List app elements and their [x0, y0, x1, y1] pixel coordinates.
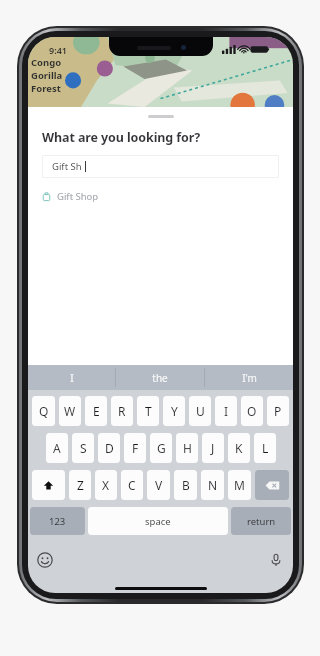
button[interactable]: J [202, 433, 224, 463]
staticText: I'm [242, 371, 257, 385]
staticText: X [102, 477, 110, 493]
button[interactable]: Q [32, 396, 55, 426]
staticText: Z [77, 477, 84, 493]
button[interactable]: 123 [30, 507, 85, 535]
button[interactable]: E [85, 396, 107, 426]
button[interactable]: Emoji keyboard [36, 551, 54, 569]
button[interactable]: Y [163, 396, 185, 426]
staticText: S [80, 440, 87, 456]
button[interactable]: S [72, 433, 94, 463]
button[interactable]: V [147, 470, 170, 500]
button[interactable]: G [150, 433, 172, 463]
staticText: C [128, 477, 136, 493]
button[interactable]: N [201, 470, 224, 500]
button[interactable]: X [95, 470, 117, 500]
button[interactable]: F [124, 433, 146, 463]
staticText: return [247, 515, 276, 528]
staticText: Forest [31, 82, 61, 95]
staticText: Gift Sh [52, 160, 82, 173]
button[interactable]: Shift [32, 470, 65, 500]
button[interactable]: M [228, 470, 251, 500]
button[interactable]: Backspace [255, 470, 289, 500]
staticText: U [196, 403, 205, 419]
staticText: H [183, 440, 192, 456]
staticText: G [157, 440, 166, 456]
staticText: Gift Shop [57, 190, 99, 203]
staticText: T [145, 403, 152, 419]
button[interactable]: Gift Sh [42, 155, 279, 178]
button[interactable]: A [46, 433, 68, 463]
button[interactable]: Z [69, 470, 91, 500]
button[interactable]: K [228, 433, 250, 463]
staticText: Congo [31, 56, 62, 69]
button[interactable]: O [241, 396, 263, 426]
staticText: V [155, 477, 163, 493]
staticText: R [118, 403, 126, 419]
button[interactable]: I'm [205, 365, 293, 390]
staticText: space [145, 515, 171, 528]
staticText: 9:41 [49, 44, 67, 56]
button[interactable]: Gift Shop [28, 187, 293, 205]
staticText: the [152, 371, 168, 385]
staticText: D [105, 440, 114, 456]
staticText: M [234, 477, 245, 493]
staticText: F [132, 440, 139, 456]
staticText: What are you looking for? [42, 129, 201, 146]
staticText: B [182, 477, 190, 493]
button[interactable]: L [254, 433, 276, 463]
staticText: N [208, 477, 218, 493]
button[interactable]: I [215, 396, 237, 426]
staticText: W [64, 403, 76, 419]
staticText: O [247, 403, 257, 419]
button[interactable]: D [98, 433, 120, 463]
button[interactable]: Dictation [268, 552, 284, 568]
button[interactable]: I [28, 365, 115, 390]
staticText: L [262, 440, 269, 456]
button[interactable]: B [174, 470, 197, 500]
button[interactable]: T [137, 396, 159, 426]
button[interactable]: R [111, 396, 133, 426]
staticText: Y [171, 403, 178, 419]
staticText: E [93, 403, 100, 419]
staticText: K [235, 440, 243, 456]
staticText: J [211, 440, 215, 456]
staticText: Gorilla [31, 69, 63, 82]
button[interactable]: C [121, 470, 143, 500]
staticText: A [53, 440, 61, 456]
button[interactable]: W [59, 396, 81, 426]
staticText: I [70, 371, 74, 385]
button[interactable]: U [189, 396, 211, 426]
staticText: 123 [49, 515, 66, 528]
staticText: Q [39, 403, 49, 419]
button[interactable]: space [88, 507, 228, 535]
button[interactable]: H [176, 433, 198, 463]
staticText: P [274, 403, 282, 419]
button[interactable]: P [267, 396, 289, 426]
button[interactable]: the [116, 365, 204, 390]
button[interactable]: return [231, 507, 291, 535]
staticText: I [224, 403, 229, 419]
